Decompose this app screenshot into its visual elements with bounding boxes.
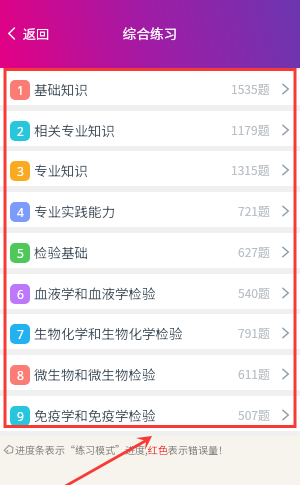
staticText: 2 [17, 123, 24, 139]
staticText: 611题 [238, 365, 270, 382]
staticText: 791题 [238, 324, 270, 341]
button[interactable]: 4 [0, 192, 300, 227]
button[interactable]: 2 [0, 111, 300, 146]
staticText: 627题 [238, 243, 270, 260]
staticText: 1 [17, 82, 24, 98]
staticText: 微生物和微生物检验 [34, 364, 156, 384]
staticText: 507题 [238, 406, 270, 423]
staticText: 721题 [238, 202, 270, 219]
button[interactable]: 8 [0, 355, 300, 390]
staticText: 7 [17, 326, 24, 342]
staticText: 表示错误量！ [168, 442, 228, 456]
staticText: 1535题 [231, 80, 270, 97]
staticText: 综合练习 [123, 23, 177, 43]
staticText: 8 [17, 367, 24, 383]
staticText: 专业实践能力 [34, 201, 115, 221]
staticText: 4 [17, 204, 24, 220]
button[interactable]: 3 [0, 151, 300, 186]
staticText: 进度条表示“练习模式”进度, [15, 442, 148, 456]
button[interactable]: 6 [0, 274, 300, 309]
staticText: 专业知识 [34, 160, 88, 180]
staticText: 3 [17, 163, 24, 179]
button[interactable]: 1 [0, 70, 300, 105]
staticText: 9 [17, 408, 24, 424]
staticText: 返回 [23, 24, 50, 43]
staticText: 生物化学和生物化学检验 [34, 323, 183, 343]
staticText: 6 [17, 286, 24, 302]
staticText: 5 [17, 245, 24, 261]
staticText: 基础知识 [34, 79, 88, 99]
button[interactable]: 5 [0, 233, 300, 268]
button[interactable]: 返回 [0, 19, 60, 48]
button[interactable]: 7 [0, 314, 300, 349]
button[interactable]: 9 [0, 396, 300, 431]
staticText: 免疫学和免疫学检验 [34, 405, 156, 425]
staticText: 红色 [148, 442, 168, 456]
staticText: 1179题 [231, 121, 270, 138]
staticText: 相关专业知识 [34, 120, 115, 140]
staticText: 检验基础 [34, 242, 88, 262]
staticText: 1315题 [231, 161, 270, 178]
staticText: 540题 [238, 284, 270, 301]
staticText: 血液学和血液学检验 [34, 283, 156, 303]
